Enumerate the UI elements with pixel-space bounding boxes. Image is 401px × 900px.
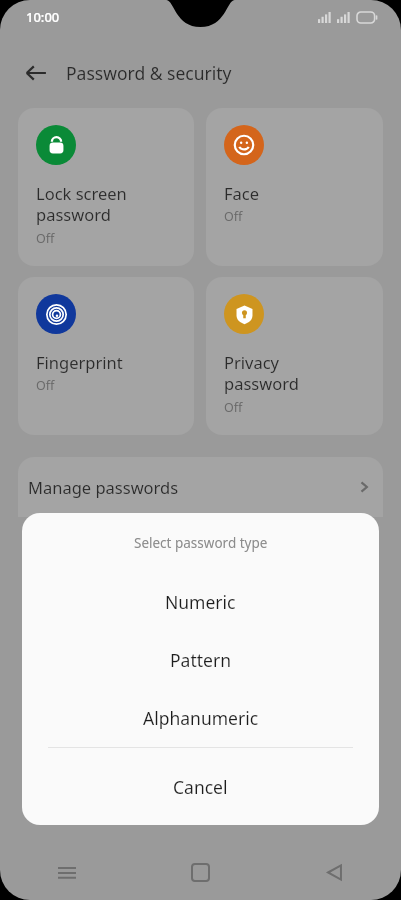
button[interactable]: Alphanumeric: [22, 689, 379, 747]
staticText: Off: [36, 230, 55, 247]
staticText: Numeric: [165, 590, 236, 614]
button[interactable]: Privacy password: [206, 277, 383, 435]
staticText: Face: [224, 182, 260, 204]
button[interactable]: Numeric: [22, 573, 379, 631]
staticText: 10:00: [26, 8, 60, 26]
staticText: Off: [224, 399, 243, 416]
staticText: Off: [224, 208, 243, 225]
staticText: Password & security: [66, 61, 232, 85]
staticText: Pattern: [170, 648, 231, 672]
button[interactable]: Manage passwords: [18, 457, 383, 517]
staticText: Lock screen password: [36, 182, 127, 226]
button[interactable]: Recent apps: [0, 844, 133, 900]
button[interactable]: Back: [267, 844, 401, 900]
staticText: Alphanumeric: [143, 706, 259, 730]
staticText: Fingerprint: [36, 351, 123, 373]
button[interactable]: Cancel: [22, 748, 379, 825]
button[interactable]: Pattern: [22, 631, 379, 689]
button[interactable]: Lock screen password: [18, 108, 194, 266]
button[interactable]: Back: [18, 56, 54, 90]
staticText: Manage passwords: [28, 476, 355, 498]
staticText: Off: [36, 377, 55, 394]
staticText: Cancel: [173, 775, 228, 799]
staticText: Privacy password: [224, 351, 299, 395]
button[interactable]: Face: [206, 108, 383, 266]
button[interactable]: Fingerprint: [18, 277, 194, 435]
staticText: Select password type: [134, 534, 268, 552]
button[interactable]: Home: [133, 844, 267, 900]
